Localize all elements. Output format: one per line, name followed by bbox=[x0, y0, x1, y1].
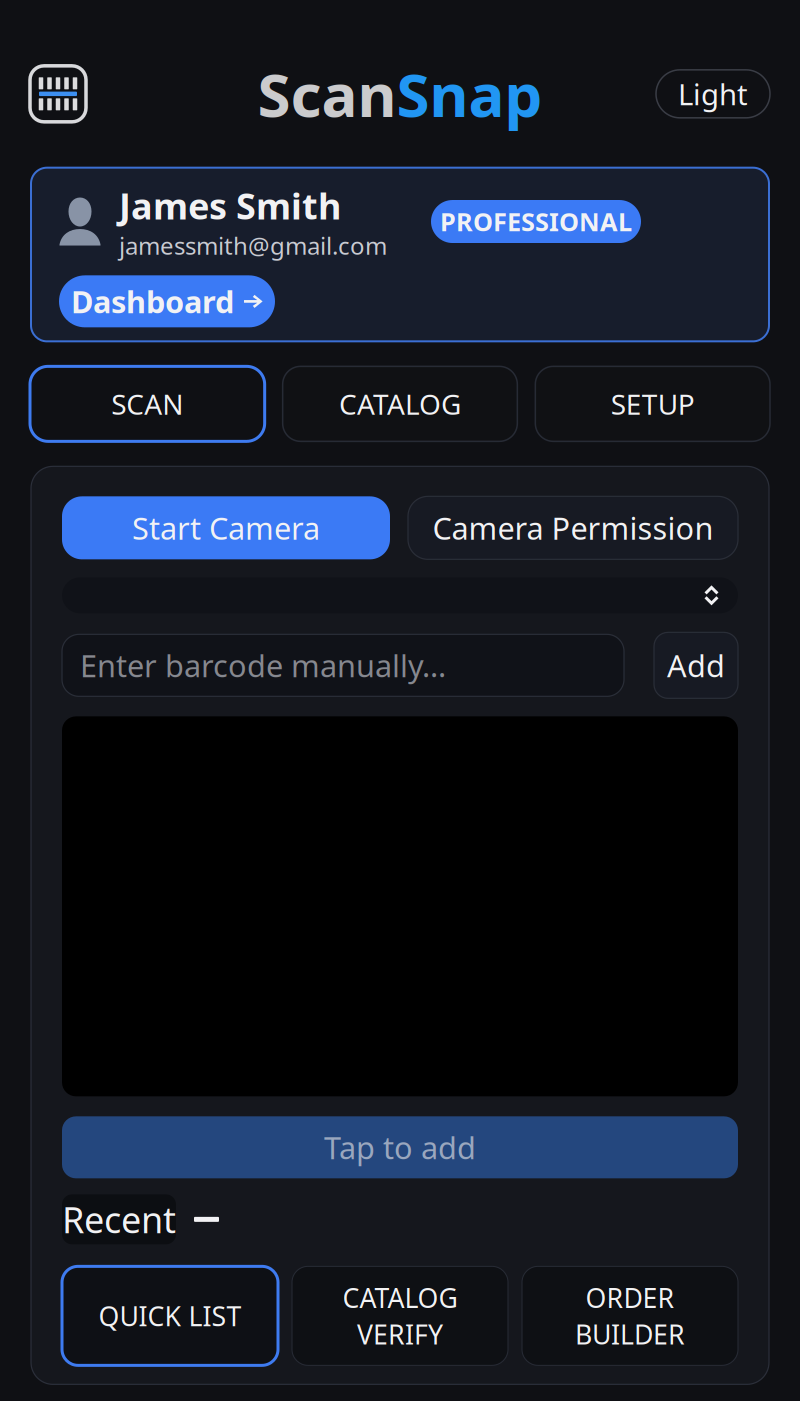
staticText: Tap to add bbox=[324, 1127, 476, 1168]
staticText: Enter barcode manually... bbox=[80, 645, 446, 686]
button[interactable]: Light bbox=[656, 70, 770, 118]
button[interactable]: Add bbox=[654, 632, 738, 698]
staticText: Scan bbox=[257, 54, 396, 134]
staticText: Dashboard bbox=[71, 281, 234, 322]
staticText: Light bbox=[678, 74, 748, 113]
button[interactable]: SETUP bbox=[535, 366, 770, 441]
button[interactable]: QUICK LIST bbox=[62, 1266, 278, 1365]
staticText: James Smith bbox=[119, 182, 341, 229]
staticText: CATALOG bbox=[342, 1280, 457, 1315]
staticText: Start Camera bbox=[132, 507, 320, 548]
button[interactable]: CATALOG bbox=[292, 1266, 508, 1365]
staticText: BUILDER bbox=[575, 1316, 685, 1352]
button[interactable]: Start Camera bbox=[62, 496, 390, 559]
button[interactable]: Barcode scanner bbox=[30, 66, 86, 122]
button[interactable] bbox=[62, 577, 738, 613]
button[interactable]: Tap to add bbox=[62, 1116, 738, 1178]
staticText: Recent bbox=[62, 1195, 176, 1243]
button[interactable]: Camera Permission bbox=[408, 496, 738, 559]
staticText: ORDER bbox=[585, 1280, 674, 1315]
staticText: QUICK LIST bbox=[98, 1298, 241, 1333]
staticText: Add bbox=[667, 645, 725, 686]
staticText: CATALOG bbox=[339, 385, 461, 422]
button[interactable]: ORDER bbox=[522, 1266, 738, 1365]
button[interactable]: Enter barcode manually... bbox=[62, 634, 624, 696]
staticText: VERIFY bbox=[357, 1316, 443, 1352]
button[interactable]: Dashboard bbox=[59, 275, 275, 327]
staticText: jamessmith@gmail.com bbox=[119, 229, 387, 261]
button[interactable]: SCAN bbox=[30, 366, 265, 441]
staticText: SETUP bbox=[611, 385, 695, 422]
staticText: SCAN bbox=[111, 385, 183, 422]
staticText: PROFESSIONAL bbox=[440, 205, 632, 238]
staticText: Camera Permission bbox=[432, 507, 713, 548]
button[interactable]: CATALOG bbox=[283, 366, 517, 441]
staticText: Snap bbox=[396, 54, 542, 134]
